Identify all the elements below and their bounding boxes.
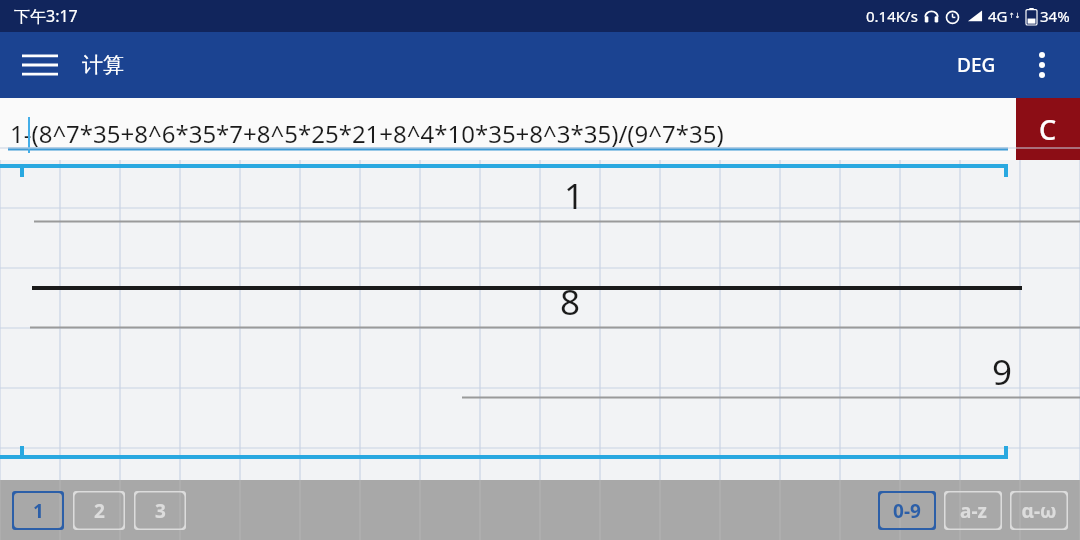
staticText: 11771 — [557, 477, 649, 521]
staticText: 1 — [33, 498, 44, 524]
staticText: 0-9 — [893, 498, 921, 524]
staticText: = — [34, 503, 53, 540]
staticText: 下午3:17 — [14, 5, 78, 27]
staticText: ↑↓ — [1009, 12, 1021, 20]
staticText: 4G — [988, 6, 1008, 26]
button[interactable]: 1-(8^7*35+8^6*35*7+8^5*25*21+8^4*10*35+8… — [0, 109, 1008, 150]
staticText: 9 — [992, 348, 1013, 396]
button[interactable]: 3 — [134, 491, 186, 530]
staticText: 0.14K/s — [866, 6, 918, 26]
staticText: 3 — [155, 498, 166, 524]
button[interactable]: a-z — [944, 491, 1002, 530]
staticText: { — [63, 478, 90, 540]
button[interactable]: More options — [1018, 41, 1066, 89]
button[interactable]: DEG — [957, 52, 996, 78]
staticText: 2 — [94, 498, 105, 524]
staticText: 1 — [564, 172, 585, 220]
button[interactable]: α-ω — [1010, 491, 1068, 530]
button[interactable]: 0-9 — [878, 491, 936, 530]
staticText: 1-(8^7*35+8^6*35*7+8^5*25*21+8^4*10*35+8… — [10, 117, 724, 150]
staticText: 计算 — [82, 52, 124, 78]
button[interactable]: Open navigation menu — [14, 39, 66, 91]
button[interactable]: 1 — [12, 491, 64, 530]
button[interactable]: C — [1016, 98, 1080, 160]
button[interactable]: 2 — [73, 491, 125, 530]
staticText: 34% — [1040, 6, 1070, 26]
staticText: a-z — [960, 498, 987, 524]
staticText: C — [1039, 111, 1057, 148]
staticText: 8 — [560, 278, 581, 326]
staticText: α-ω — [1021, 498, 1057, 524]
